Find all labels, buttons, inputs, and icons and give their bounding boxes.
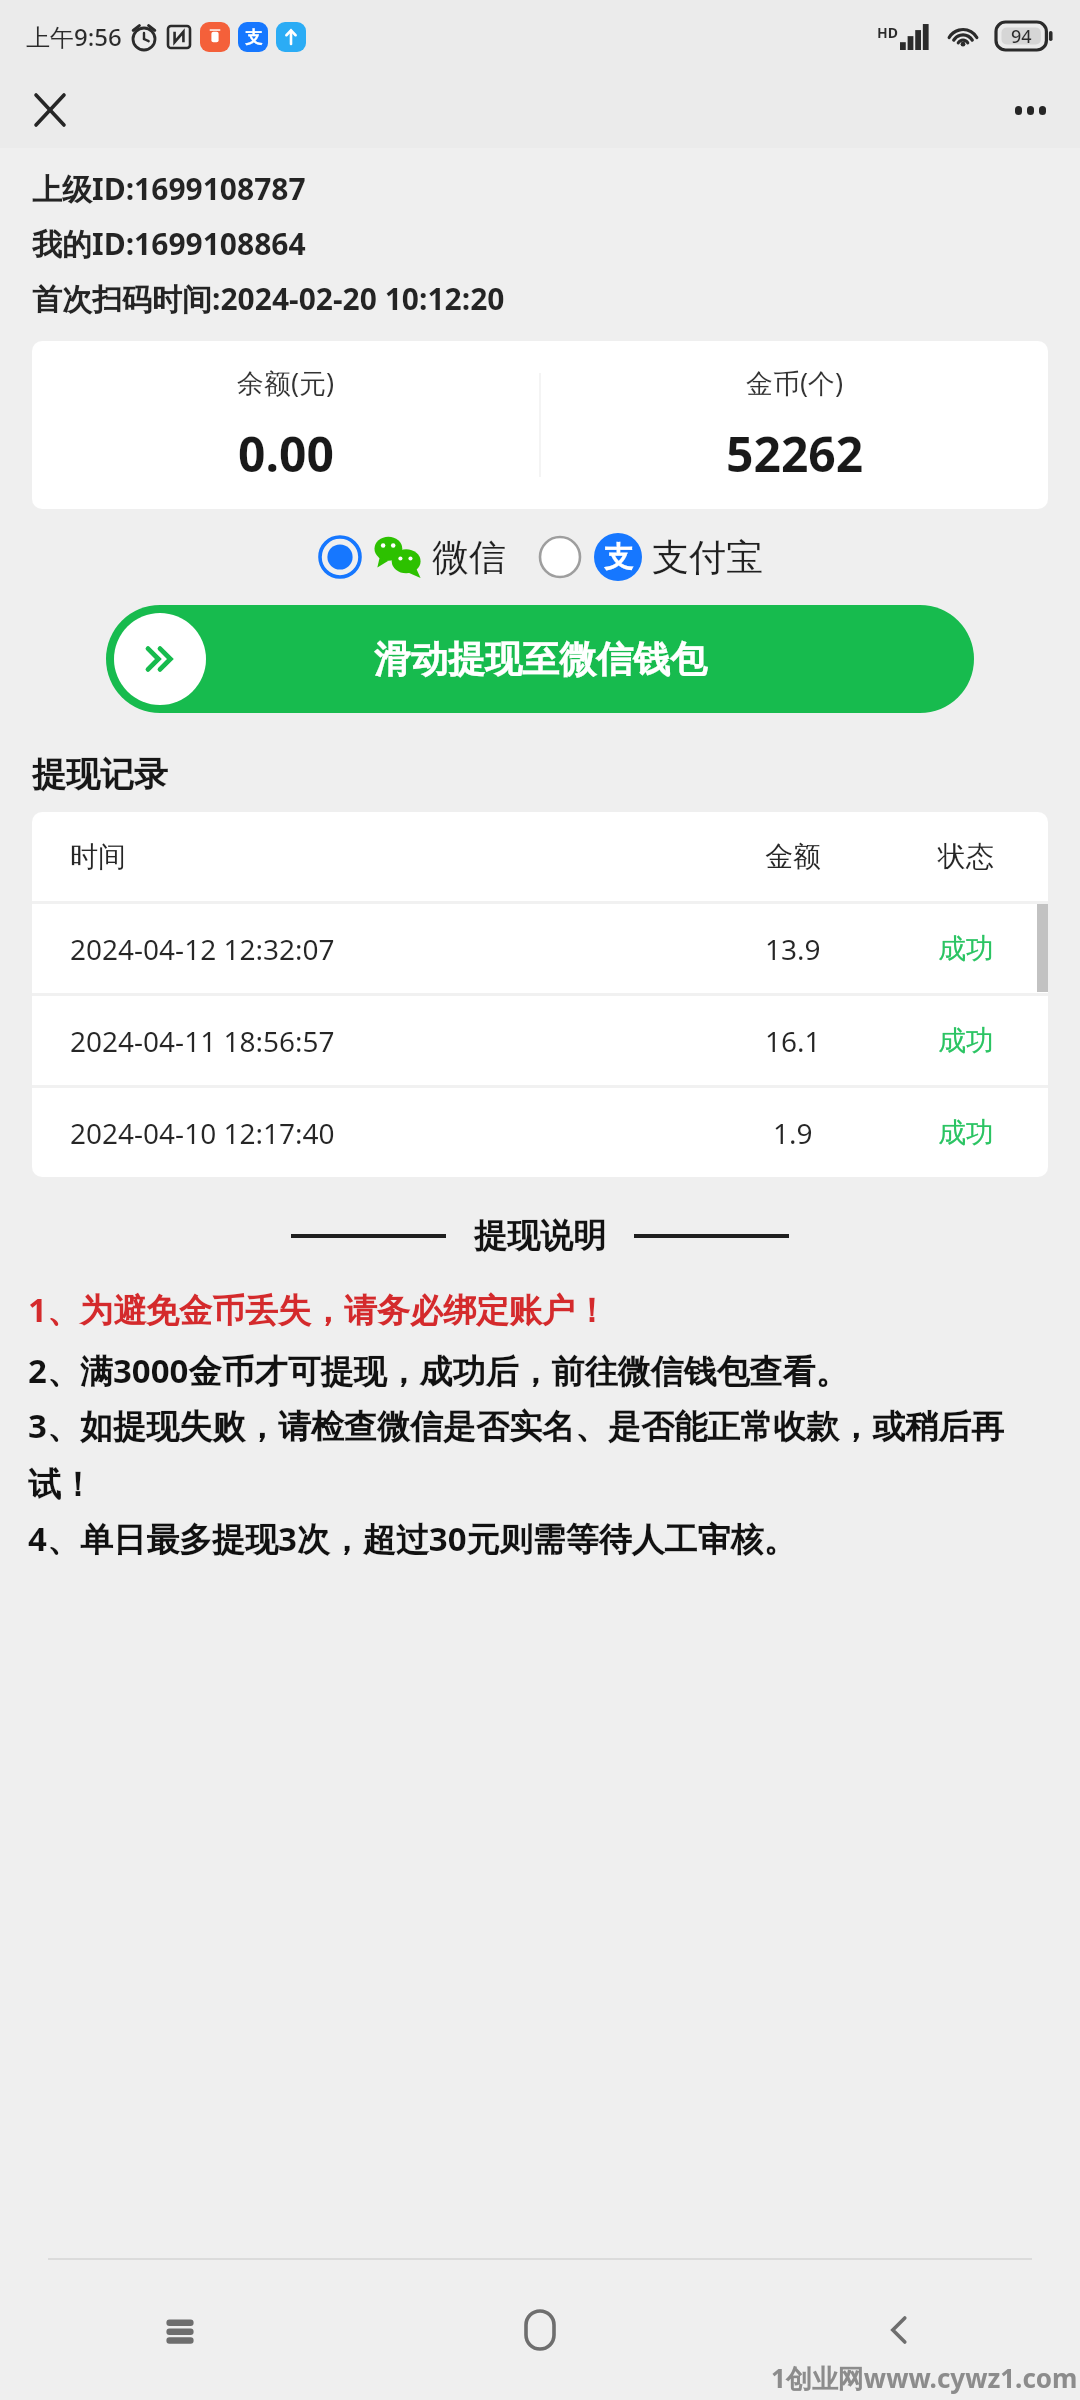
staticText: 首次扫码时间:2024-02-20 10:12:20 [32, 278, 505, 319]
staticText: 1.9 [773, 1114, 813, 1152]
button[interactable]: 微信 [318, 533, 506, 581]
button[interactable]: 2024-04-10 12:17:40 [32, 1088, 1048, 1177]
button[interactable]: Close [20, 80, 80, 140]
staticText: 13.9 [765, 930, 821, 968]
staticText: 成功 [938, 1023, 994, 1058]
button[interactable]: 时间 [32, 812, 1048, 901]
staticText: 提现记录 [32, 753, 168, 796]
button[interactable]: 支 [538, 533, 763, 581]
staticText: 金币(个) [746, 364, 844, 401]
staticText: 支 [245, 27, 262, 48]
staticText: 上级ID:1699108787 [32, 168, 306, 209]
staticText: 2024-04-11 18:56:57 [70, 1022, 335, 1060]
staticText: 支付宝 [652, 534, 763, 581]
staticText: 成功 [938, 1115, 994, 1150]
staticText: 1创业网www.cywz1.com [771, 2360, 1078, 2396]
staticText: 成功 [938, 931, 994, 966]
staticText: 提现说明 [474, 1215, 606, 1257]
staticText: HD [877, 23, 898, 42]
button[interactable]: 2024-04-12 12:32:07 [32, 904, 1048, 993]
staticText: 52262 [726, 421, 864, 486]
staticText: 2024-04-12 12:32:07 [70, 930, 335, 968]
staticText: 支 [604, 539, 633, 576]
staticText: 4、单日最多提现3次，超过30元则需等待人工审核。 [28, 1516, 797, 1561]
button[interactable]: Recents [0, 2260, 360, 2400]
staticText: 2、满3000金币才可提现，成功后，前往微信钱包查看。 [28, 1348, 849, 1393]
button[interactable]: Back [720, 2260, 1080, 2400]
button[interactable]: 滑动提现至微信钱包 [106, 605, 974, 713]
button[interactable]: Home [360, 2260, 720, 2400]
button[interactable]: More options [1000, 80, 1060, 140]
staticText: 1、为避免金币丢失，请务必绑定账户！ [28, 1287, 608, 1332]
staticText: 0.00 [238, 421, 334, 486]
staticText: 时间 [70, 839, 126, 874]
staticText: 上午9:56 [26, 20, 122, 53]
staticText: 我的ID:1699108864 [32, 223, 306, 264]
staticText: 余额(元) [237, 364, 335, 401]
button[interactable]: 2024-04-11 18:56:57 [32, 996, 1048, 1085]
staticText: 状态 [938, 839, 994, 874]
staticText: 2024-04-10 12:17:40 [70, 1114, 335, 1152]
staticText: 3、如提现失败，请检查微信是否实名、是否能正常收款，或稍后再试！ [28, 1403, 1056, 1506]
staticText: 16.1 [765, 1022, 821, 1060]
staticText: 微信 [432, 534, 506, 581]
staticText: 滑动提现至微信钱包 [374, 636, 707, 683]
other: Slide to withdraw [114, 613, 206, 705]
staticText: 94 [1011, 24, 1032, 49]
staticText: 金额 [765, 839, 821, 874]
